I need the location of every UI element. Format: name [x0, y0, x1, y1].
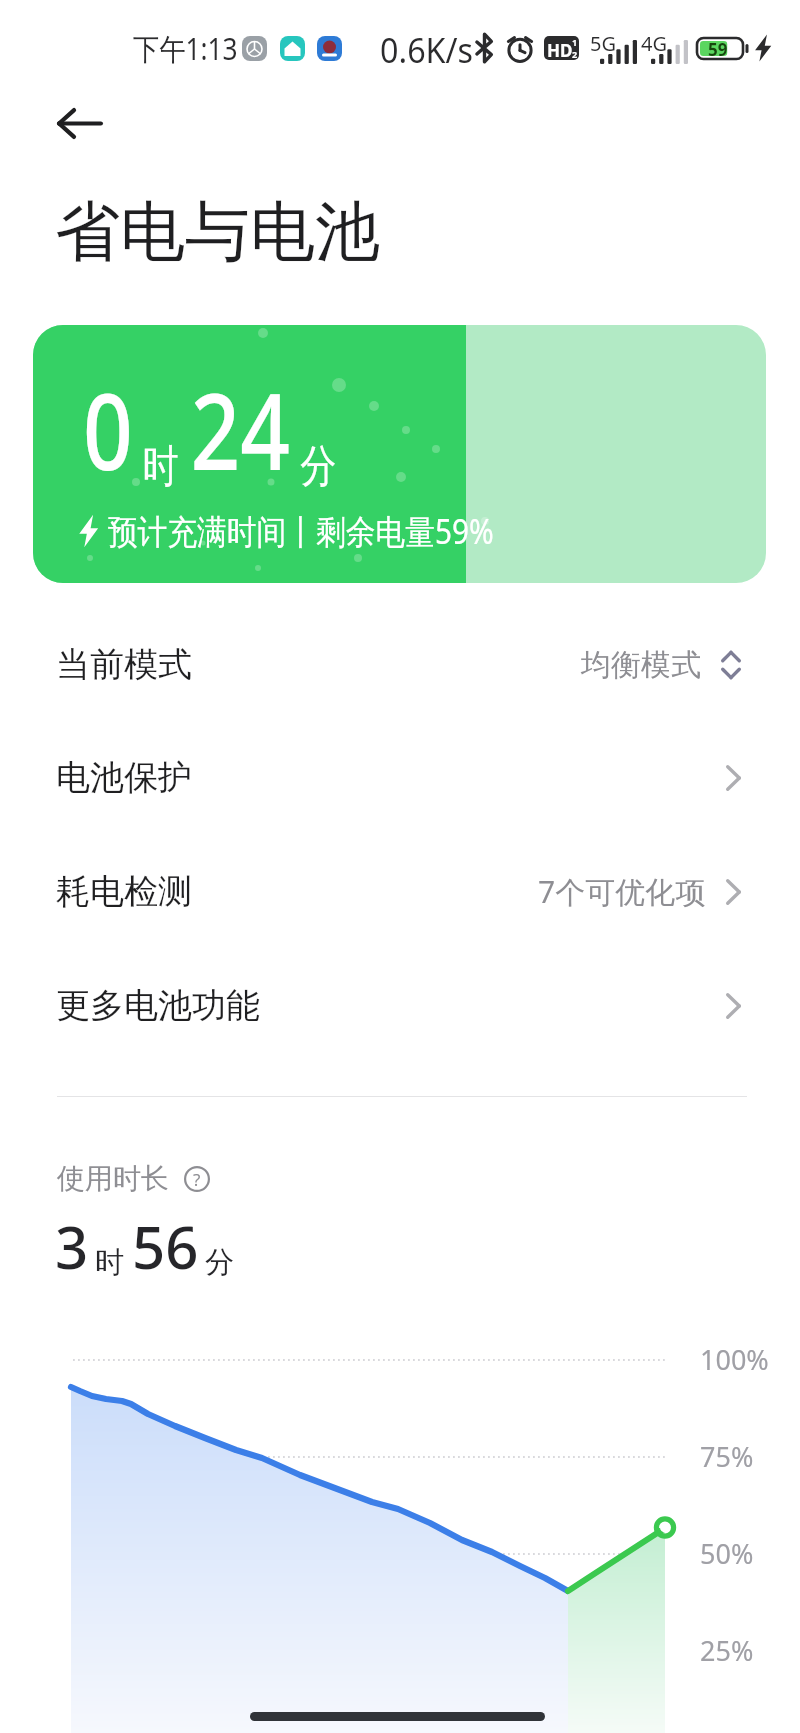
- staticText: 0.6K/s: [380, 27, 473, 69]
- staticText: HD: [547, 39, 573, 60]
- staticText: 省电与电池: [55, 191, 380, 273]
- staticText: 预计充满时间丨剩余电量59%: [108, 508, 495, 554]
- staticText: 当前模式: [56, 643, 192, 686]
- staticText: 100%: [700, 1341, 769, 1378]
- staticText: 2: [572, 48, 578, 60]
- staticText: 使用时长: [57, 1161, 169, 1196]
- staticText: 5G: [590, 30, 616, 57]
- staticText: 25%: [700, 1632, 754, 1669]
- staticText: ?: [193, 1168, 201, 1191]
- staticText: 下午1:13: [133, 28, 238, 68]
- staticText: 电池保护: [56, 756, 192, 799]
- staticText: 分: [300, 439, 336, 494]
- staticText: 1: [572, 36, 578, 48]
- button[interactable]: 电池保护: [0, 721, 800, 834]
- staticText: 时: [95, 1244, 124, 1281]
- staticText: 更多电池功能: [56, 984, 260, 1027]
- staticText: 56: [132, 1207, 199, 1286]
- staticText: 50%: [700, 1535, 754, 1572]
- staticText: 耗电检测: [56, 870, 192, 913]
- button[interactable]: 耗电检测: [0, 835, 800, 948]
- staticText: 24: [190, 357, 290, 501]
- button[interactable]: Back: [34, 88, 126, 158]
- staticText: 4G: [641, 30, 667, 57]
- staticText: 7个可优化项: [538, 871, 706, 912]
- button[interactable]: Help: [184, 1166, 210, 1192]
- staticText: 分: [205, 1244, 234, 1281]
- button[interactable]: 0: [33, 325, 766, 583]
- staticText: 均衡模式: [581, 646, 701, 684]
- staticText: 时: [143, 439, 179, 494]
- staticText: 0: [83, 357, 133, 501]
- staticText: 75%: [700, 1438, 754, 1475]
- button[interactable]: 更多电池功能: [0, 949, 800, 1062]
- button[interactable]: 当前模式: [0, 608, 800, 721]
- staticText: 3: [55, 1207, 89, 1286]
- staticText: 59: [708, 38, 728, 59]
